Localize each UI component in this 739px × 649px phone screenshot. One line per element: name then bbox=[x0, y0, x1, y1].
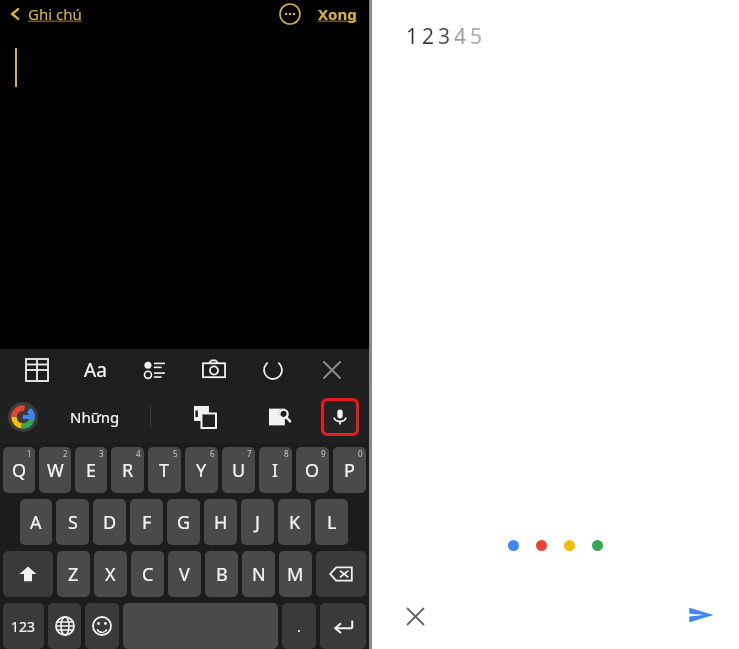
button[interactable]: E bbox=[75, 447, 107, 493]
button[interactable]: Change language bbox=[48, 603, 81, 649]
staticText: A bbox=[30, 510, 42, 535]
staticText: 4 bbox=[454, 22, 467, 51]
button[interactable]: H bbox=[204, 499, 237, 545]
button[interactable]: Period bbox=[282, 603, 316, 649]
staticText: Aa bbox=[84, 357, 107, 383]
staticText: 3 bbox=[438, 22, 451, 51]
staticText: 1 bbox=[27, 448, 32, 459]
button[interactable]: Close keyboard bbox=[302, 349, 361, 391]
button[interactable]: G bbox=[167, 499, 200, 545]
staticText: 2 bbox=[63, 448, 68, 459]
staticText: V bbox=[179, 562, 190, 587]
staticText: 6 bbox=[210, 448, 215, 459]
button[interactable]: Google bbox=[6, 400, 40, 434]
button[interactable]: Y bbox=[185, 447, 218, 493]
button[interactable]: M bbox=[279, 551, 312, 597]
staticText: 7 bbox=[247, 448, 252, 459]
button[interactable]: L bbox=[315, 499, 348, 545]
button[interactable]: Lens bbox=[260, 397, 300, 437]
staticText: Xong bbox=[318, 4, 357, 24]
button[interactable]: R bbox=[111, 447, 144, 493]
button[interactable]: Emoji bbox=[85, 603, 119, 649]
button[interactable]: S bbox=[56, 499, 89, 545]
button[interactable]: D bbox=[93, 499, 126, 545]
staticText: U bbox=[232, 458, 246, 483]
button[interactable]: Cancel bbox=[398, 599, 432, 633]
staticText: Ghi chú bbox=[28, 4, 82, 24]
button[interactable]: I bbox=[259, 447, 292, 493]
button[interactable]: N bbox=[242, 551, 275, 597]
button[interactable]: A bbox=[20, 499, 52, 545]
button[interactable]: Table bbox=[8, 349, 66, 391]
staticText: I bbox=[272, 458, 279, 483]
staticText: S bbox=[68, 510, 78, 535]
button[interactable]: X bbox=[94, 551, 127, 597]
staticText: 0 bbox=[358, 448, 363, 459]
staticText: F bbox=[142, 510, 152, 535]
button[interactable]: U bbox=[222, 447, 255, 493]
button[interactable]: J bbox=[241, 499, 274, 545]
staticText: 1 bbox=[406, 22, 419, 51]
staticText: 3 bbox=[99, 448, 104, 459]
button[interactable]: O bbox=[296, 447, 329, 493]
button[interactable]: More options bbox=[278, 2, 302, 26]
staticText: J bbox=[255, 510, 260, 535]
staticText: N bbox=[252, 562, 266, 587]
button[interactable]: Q bbox=[3, 447, 35, 493]
button[interactable]: Ghi chú bbox=[4, 0, 86, 28]
button[interactable]: W bbox=[39, 447, 71, 493]
staticText: Z bbox=[68, 562, 79, 587]
staticText: X bbox=[105, 562, 116, 587]
button[interactable]: Send bbox=[681, 595, 721, 635]
staticText: C bbox=[142, 562, 154, 587]
staticText: T bbox=[159, 458, 170, 483]
staticText: O bbox=[305, 458, 320, 483]
button[interactable]: K bbox=[278, 499, 311, 545]
staticText: 9 bbox=[321, 448, 326, 459]
button[interactable]: Text format bbox=[66, 349, 125, 391]
staticText: Y bbox=[196, 458, 207, 483]
button[interactable]: V bbox=[168, 551, 201, 597]
staticText: H bbox=[214, 510, 228, 535]
button[interactable]: Numbers bbox=[3, 603, 44, 649]
button[interactable]: F bbox=[130, 499, 163, 545]
staticText: 2 bbox=[422, 22, 435, 51]
button[interactable]: Shift bbox=[3, 551, 53, 597]
button[interactable]: Undo bbox=[243, 349, 302, 391]
staticText: L bbox=[327, 510, 337, 535]
button[interactable]: B bbox=[205, 551, 238, 597]
staticText: M bbox=[287, 562, 304, 587]
staticText: 4 bbox=[136, 448, 141, 459]
staticText: Q bbox=[12, 458, 27, 483]
staticText: R bbox=[122, 458, 134, 483]
staticText: D bbox=[103, 510, 117, 535]
button[interactable]: Camera bbox=[184, 349, 243, 391]
button[interactable]: Voice input bbox=[324, 401, 356, 433]
staticText: 5 bbox=[173, 448, 178, 459]
button[interactable]: Checklist bbox=[125, 349, 184, 391]
staticText: P bbox=[344, 458, 355, 483]
staticText: E bbox=[86, 458, 97, 483]
staticText: W bbox=[47, 458, 64, 483]
button[interactable]: Những bbox=[40, 391, 150, 443]
button[interactable]: Z bbox=[57, 551, 90, 597]
staticText: 8 bbox=[284, 448, 289, 459]
staticText: G bbox=[177, 510, 191, 535]
button[interactable]: Translate bbox=[185, 397, 225, 437]
staticText: 123 bbox=[11, 617, 36, 636]
button[interactable]: Backspace bbox=[316, 551, 366, 597]
button[interactable]: Xong bbox=[314, 0, 361, 28]
staticText: B bbox=[216, 562, 228, 587]
button[interactable]: T bbox=[148, 447, 181, 493]
button[interactable]: P bbox=[333, 447, 366, 493]
staticText: . bbox=[297, 617, 301, 636]
staticText: Những bbox=[70, 407, 120, 427]
staticText: K bbox=[289, 510, 301, 535]
staticText: 5 bbox=[470, 22, 483, 51]
button[interactable]: C bbox=[131, 551, 164, 597]
button[interactable]: Enter bbox=[320, 603, 366, 649]
